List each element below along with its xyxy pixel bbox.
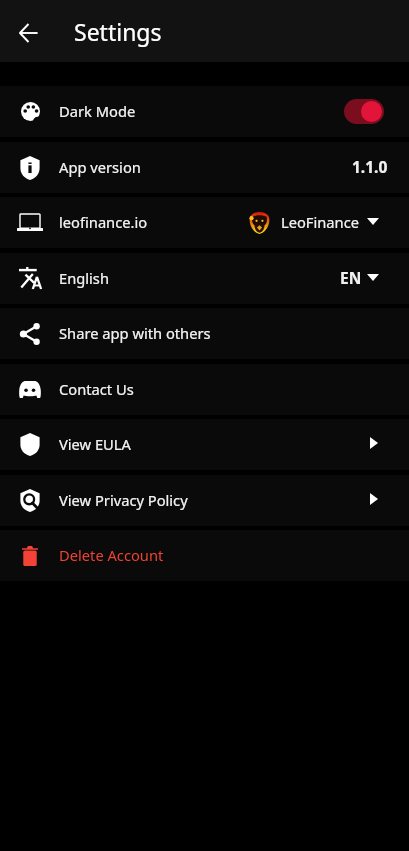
staticText: LeoFinance bbox=[281, 212, 360, 232]
staticText: Settings bbox=[74, 16, 162, 47]
button[interactable]: View EULA bbox=[0, 419, 409, 470]
button[interactable]: leofinance.io bbox=[0, 197, 409, 248]
button[interactable]: View Privacy Policy bbox=[0, 475, 409, 526]
button[interactable]: Delete Account bbox=[0, 530, 409, 581]
button[interactable]: English bbox=[0, 253, 409, 304]
button[interactable]: Dark Mode bbox=[0, 86, 409, 137]
button[interactable]: App version bbox=[0, 142, 409, 193]
staticText: EN bbox=[340, 267, 362, 288]
staticText: English bbox=[59, 268, 109, 288]
staticText: Dark Mode bbox=[59, 101, 136, 121]
button[interactable]: Contact Us bbox=[0, 364, 409, 415]
staticText: Contact Us bbox=[59, 379, 134, 399]
button[interactable]: Back bbox=[8, 0, 48, 62]
staticText: View Privacy Policy bbox=[59, 490, 188, 510]
staticText: 1.1.0 bbox=[352, 156, 388, 177]
staticText: App version bbox=[59, 157, 141, 177]
staticText: Delete Account bbox=[59, 545, 164, 565]
staticText: View EULA bbox=[59, 434, 131, 454]
button[interactable]: Share app with others bbox=[0, 308, 409, 359]
staticText: leofinance.io bbox=[59, 212, 148, 232]
staticText: Share app with others bbox=[59, 323, 211, 343]
button[interactable]: Dark Mode toggle bbox=[344, 99, 384, 124]
